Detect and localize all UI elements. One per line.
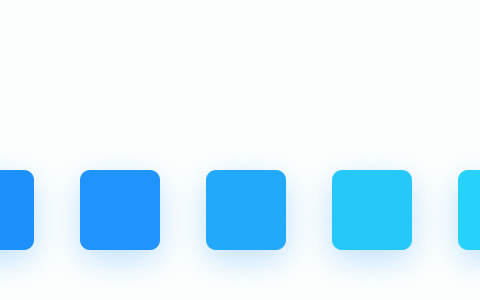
button[interactable]: Colour swatch 4 [332,170,412,250]
button[interactable]: Colour swatch 3 [206,170,286,250]
button[interactable]: Colour swatch 5 [458,170,480,250]
button[interactable]: Colour swatch 1 [0,170,34,250]
button[interactable]: Colour swatch 2 [80,170,160,250]
